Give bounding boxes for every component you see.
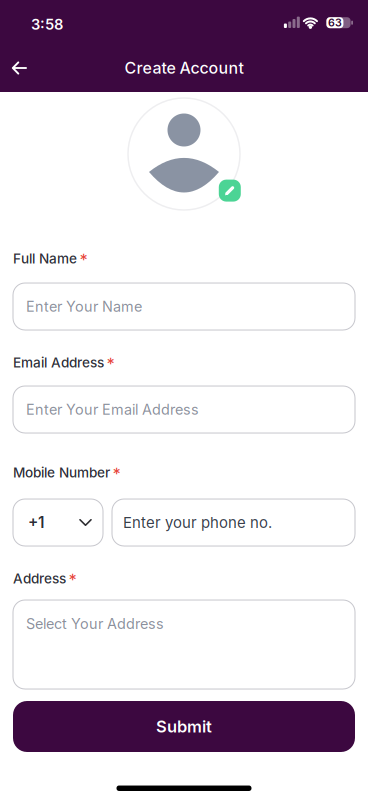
staticText: Enter your phone no. (123, 513, 272, 532)
button[interactable]: Select Your Address (13, 600, 355, 689)
staticText: * (79, 250, 87, 270)
staticText: * (112, 464, 120, 484)
staticText: * (68, 570, 76, 590)
button[interactable]: Back (0, 47, 26, 88)
staticText: Full Name (13, 250, 77, 267)
staticText: Select Your Address (26, 615, 164, 632)
staticText: Enter Your Email Address (26, 401, 199, 418)
staticText: Create Account (124, 58, 243, 78)
button[interactable]: Country code +1 (13, 499, 103, 546)
staticText: Submit (156, 716, 212, 736)
button[interactable]: Submit (13, 701, 355, 752)
staticText: 3:58 (31, 16, 63, 33)
button[interactable]: Edit photo (219, 180, 241, 202)
staticText: * (106, 354, 114, 374)
staticText: 63 (328, 16, 342, 29)
button[interactable]: Enter Your Email Address (13, 386, 355, 433)
button[interactable]: Enter Your Name (13, 283, 355, 330)
staticText: Email Address (13, 354, 104, 371)
button[interactable]: Enter your phone no. (112, 499, 355, 546)
staticText: Enter Your Name (26, 298, 142, 315)
staticText: +1 (28, 513, 44, 532)
staticText: Address (13, 570, 66, 587)
staticText: Mobile Number (13, 464, 110, 481)
